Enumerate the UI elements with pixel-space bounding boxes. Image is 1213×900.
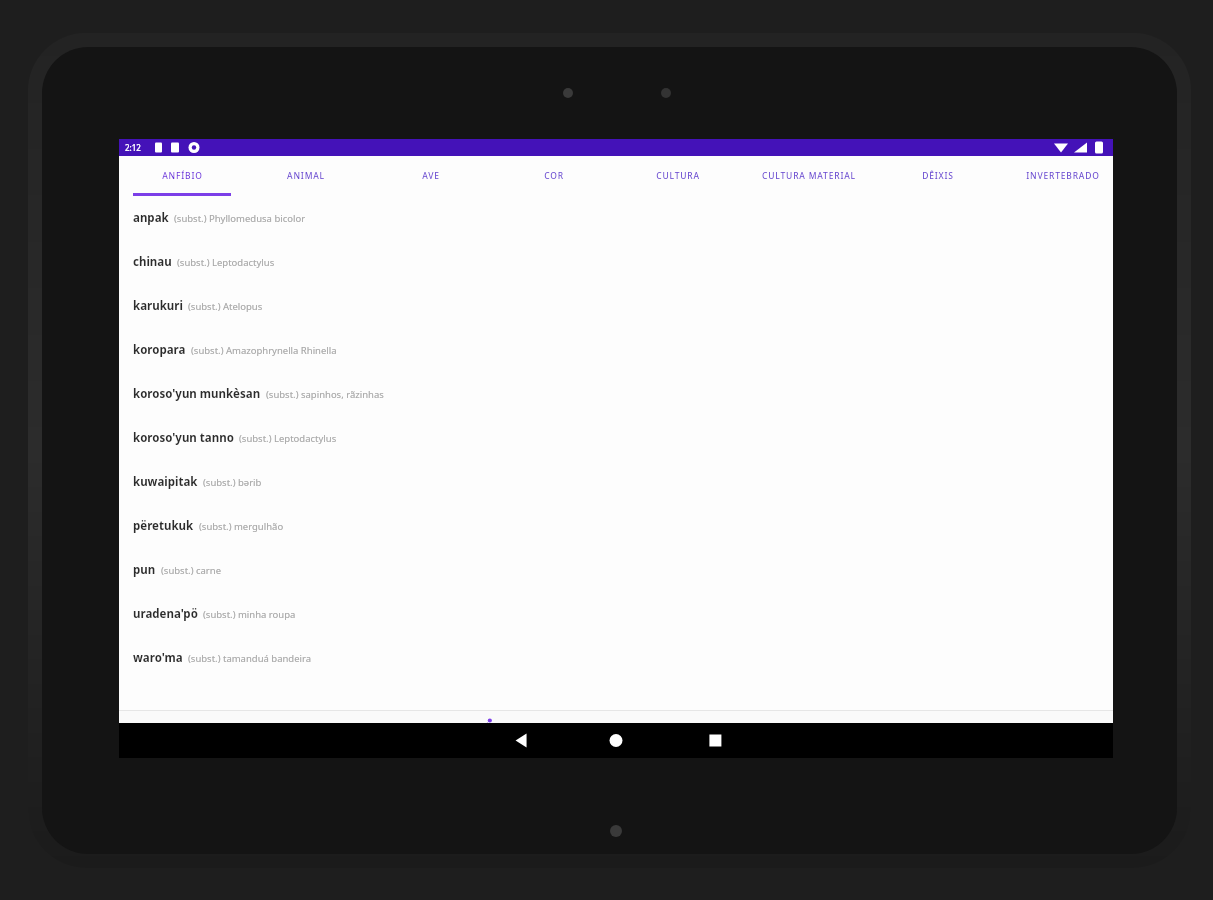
button[interactable]: COR	[499, 156, 609, 196]
staticText: uradena'pö	[133, 606, 198, 622]
button[interactable]: anpak	[119, 196, 1113, 240]
staticText: (subst.) Phyllomedusa bicolor	[174, 212, 306, 225]
staticText: (subst.) minha roupa	[203, 608, 296, 621]
staticText: (subst.) Amazophrynella Rhinella	[191, 344, 337, 357]
staticText: chinau	[133, 254, 172, 270]
button[interactable]: AVE	[376, 156, 486, 196]
staticText: karukuri	[133, 298, 183, 314]
staticText: anpak	[133, 210, 169, 226]
staticText: CULTURA	[656, 170, 700, 182]
staticText: (subst.) sapinhos, rãzinhas	[266, 388, 384, 401]
staticText: pun	[133, 562, 156, 578]
staticText: ANFÍBIO	[162, 170, 203, 182]
staticText: (subst.) Atelopus	[188, 300, 263, 313]
button[interactable]: koropara	[119, 328, 1113, 372]
staticText: waro'ma	[133, 650, 183, 666]
staticText: 2:12	[125, 142, 141, 153]
button[interactable]: Sem - Taurəseng	[425, 710, 545, 755]
button[interactable]: chinau	[119, 240, 1113, 284]
button[interactable]: waro'ma	[119, 636, 1113, 680]
staticText: kuwaipitak	[133, 474, 198, 490]
button[interactable]: koroso'yun tanno	[119, 416, 1113, 460]
staticText: AVE	[422, 170, 440, 182]
staticText: koroso'yun munkèsan	[133, 386, 261, 402]
button[interactable]: uradena'pö	[119, 592, 1113, 636]
button[interactable]: DÊIXIS	[883, 156, 993, 196]
staticText: koroso'yun tanno	[133, 430, 234, 446]
staticText: DÊIXIS	[922, 170, 954, 182]
button[interactable]: ANIMAL	[251, 156, 361, 196]
staticText: COR	[544, 170, 564, 182]
staticText: INVERTEBRADO	[1026, 170, 1100, 182]
staticText: (subst.) Leptodactylus	[239, 432, 337, 445]
staticText: (subst.) mergulhão	[199, 520, 284, 533]
button[interactable]: karukuri	[119, 284, 1113, 328]
staticText: ANIMAL	[287, 170, 325, 182]
button[interactable]: Settings	[706, 710, 786, 755]
staticText: (subst.) bərib	[203, 476, 262, 489]
staticText: përetukuk	[133, 518, 194, 534]
staticText: koropara	[133, 342, 186, 358]
button[interactable]: Preferences	[836, 710, 916, 755]
button[interactable]: kuwaipitak	[119, 460, 1113, 504]
button[interactable]: përetukuk	[119, 504, 1113, 548]
button[interactable]: CULTURA MATERIAL	[734, 156, 884, 196]
button[interactable]: CULTURA	[623, 156, 733, 196]
button[interactable]: Animals	[575, 710, 655, 755]
staticText: (subst.) tamanduá bandeira	[188, 652, 312, 665]
button[interactable]: ANFÍBIO	[127, 156, 237, 196]
staticText: (subst.) Leptodactylus	[177, 256, 275, 269]
staticText: CULTURA MATERIAL	[762, 170, 856, 182]
staticText: (subst.) carne	[161, 564, 222, 577]
button[interactable]: Home	[315, 710, 395, 755]
button[interactable]: koroso'yun munkèsan	[119, 372, 1113, 416]
button[interactable]: INVERTEBRADO	[998, 156, 1128, 196]
button[interactable]: pun	[119, 548, 1113, 592]
